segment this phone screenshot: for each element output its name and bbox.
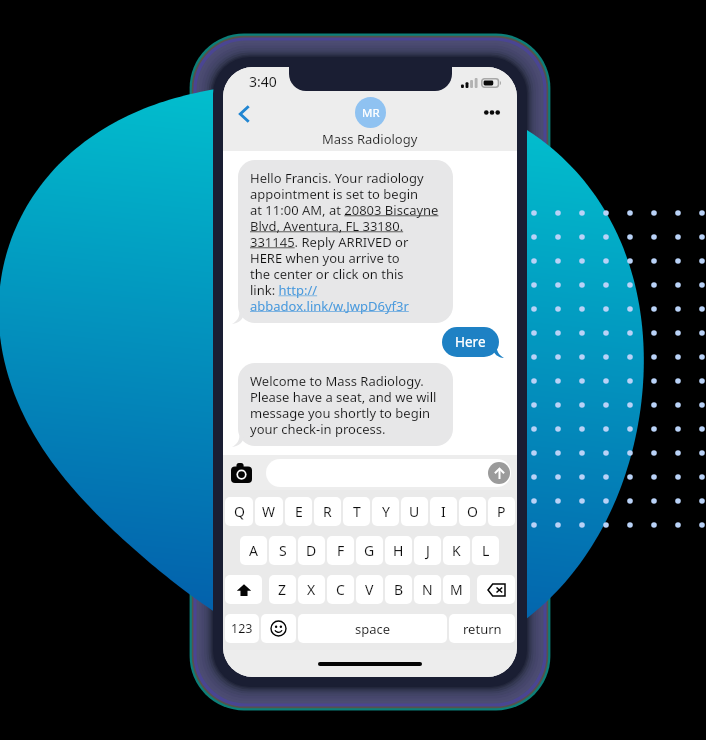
staticText: K <box>452 541 461 560</box>
staticText: B <box>394 580 404 599</box>
staticText: Y <box>382 502 390 521</box>
button[interactable]: O <box>459 497 486 526</box>
button[interactable]: N <box>414 575 441 604</box>
button[interactable]: I <box>430 497 457 526</box>
staticText: V <box>365 580 374 599</box>
button[interactable]: Backspace <box>477 575 515 604</box>
button[interactable]: J <box>414 536 441 565</box>
button[interactable]: Q <box>225 497 253 526</box>
button[interactable]: T <box>343 497 370 526</box>
staticText: 123 <box>231 620 253 637</box>
staticText: X <box>307 580 316 599</box>
button[interactable]: Welcome to Mass Radiology. Please have a… <box>238 363 453 446</box>
button[interactable]: L <box>472 536 499 565</box>
button[interactable]: D <box>298 536 325 565</box>
button[interactable]: return <box>449 614 515 643</box>
button[interactable]: More options <box>473 93 511 131</box>
button[interactable]: M <box>443 575 470 604</box>
staticText: P <box>497 502 506 521</box>
staticText: O <box>467 502 478 521</box>
staticText: I <box>441 502 446 521</box>
staticText: Mass Radiology <box>322 130 418 148</box>
button[interactable]: Shift <box>225 575 262 604</box>
staticText: Hello Francis. Your radiology appointmen… <box>250 169 439 314</box>
staticText: space <box>355 620 391 638</box>
staticText: D <box>306 541 317 560</box>
staticText: U <box>409 502 420 521</box>
button[interactable]: Back <box>225 95 263 133</box>
staticText: Z <box>278 580 287 599</box>
button[interactable]: C <box>327 575 354 604</box>
staticText: MR <box>362 105 380 121</box>
staticText: F <box>337 541 345 560</box>
staticText: C <box>336 580 345 599</box>
staticText: Q <box>234 502 245 521</box>
button[interactable]: K <box>443 536 470 565</box>
button[interactable]: G <box>356 536 383 565</box>
button[interactable]: 123 <box>225 614 259 643</box>
staticText: return <box>463 620 502 638</box>
button[interactable]: Send <box>488 462 510 484</box>
staticText: N <box>422 580 433 599</box>
button[interactable]: Y <box>372 497 399 526</box>
staticText: E <box>295 502 303 521</box>
staticText: Here <box>455 333 486 351</box>
button[interactable]: U <box>401 497 428 526</box>
staticText: S <box>279 541 287 560</box>
button[interactable]: E <box>285 497 312 526</box>
staticText: T <box>353 502 361 521</box>
staticText: H <box>393 541 404 560</box>
button[interactable]: P <box>488 497 515 526</box>
staticText: L <box>482 541 490 560</box>
button[interactable]: A <box>240 536 267 565</box>
button[interactable]: Here <box>442 327 499 357</box>
button[interactable]: Z <box>269 575 296 604</box>
staticText: W <box>262 502 276 521</box>
staticText: R <box>323 502 332 521</box>
button[interactable]: Camera <box>228 459 255 486</box>
staticText: Welcome to Mass Radiology. Please have a… <box>250 372 437 437</box>
staticText: 3:40 <box>249 72 277 91</box>
button[interactable]: Hello Francis. Your radiology appointmen… <box>238 160 453 323</box>
button[interactable]: H <box>385 536 412 565</box>
button[interactable]: W <box>255 497 283 526</box>
button[interactable]: X <box>298 575 325 604</box>
button[interactable] <box>266 459 511 487</box>
button[interactable]: V <box>356 575 383 604</box>
staticText: A <box>249 541 258 560</box>
button[interactable]: Emoji <box>261 614 296 643</box>
button[interactable]: B <box>385 575 412 604</box>
button[interactable]: F <box>327 536 354 565</box>
staticText: G <box>364 541 375 560</box>
staticText: J <box>426 541 430 560</box>
button[interactable]: S <box>269 536 296 565</box>
button[interactable]: R <box>314 497 341 526</box>
staticText: M <box>450 580 463 599</box>
button[interactable]: space <box>298 614 447 643</box>
